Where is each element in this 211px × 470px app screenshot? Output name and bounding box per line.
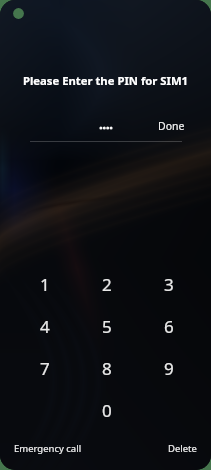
staticText: Done	[158, 119, 185, 133]
staticText: 7	[40, 357, 50, 380]
staticText: 6	[164, 315, 174, 338]
button[interactable]: 0	[76, 389, 138, 431]
staticText: 4	[40, 315, 50, 338]
button[interactable]: 8	[76, 347, 138, 389]
staticText: Delete	[168, 442, 197, 455]
button[interactable]: 1	[14, 263, 76, 305]
button[interactable]: 5	[76, 305, 138, 347]
staticText: Emergency call	[14, 442, 82, 455]
staticText: 3	[164, 273, 174, 296]
button[interactable]: 2	[76, 263, 138, 305]
button[interactable]: 6	[138, 305, 200, 347]
staticText: 9	[164, 357, 174, 380]
staticText: 1	[40, 273, 50, 296]
button[interactable]: 4	[14, 305, 76, 347]
staticText: 0	[102, 399, 112, 422]
staticText: 2	[102, 273, 112, 296]
button[interactable]: Delete	[164, 438, 201, 459]
button[interactable]: 9	[138, 347, 200, 389]
button[interactable]: 7	[14, 347, 76, 389]
button[interactable]: Done	[154, 114, 189, 138]
staticText: 5	[102, 315, 112, 338]
staticText: Please Enter the PIN for SIM1	[0, 73, 211, 88]
button[interactable]: PIN entry field	[0, 116, 211, 140]
button[interactable]: 3	[138, 263, 200, 305]
button[interactable]: Emergency call	[10, 438, 86, 459]
staticText: 8	[102, 357, 112, 380]
